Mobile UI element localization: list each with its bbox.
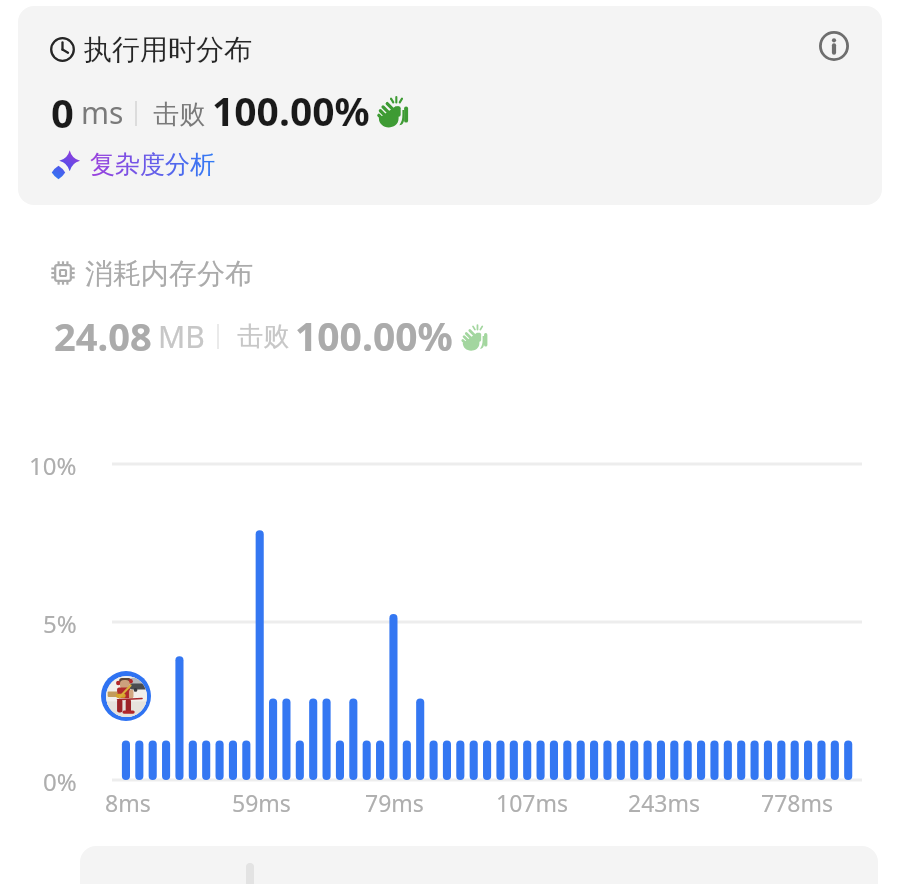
staticText: 100.00% [212,84,370,137]
staticText: 79ms [365,787,424,818]
button[interactable]: About execution time distribution [819,31,849,61]
button[interactable]: 消耗内存分布 [30,240,530,365]
staticText: 8ms [105,787,151,818]
staticText: 100.00% [295,309,453,362]
staticText: 107ms [496,787,568,818]
staticText: 消耗内存分布 [85,256,253,291]
staticText: 778ms [761,787,833,818]
staticText: 5% [43,607,77,640]
staticText: MB [158,316,205,357]
staticText: ms [81,92,124,133]
staticText: 0 [51,85,74,139]
staticText: 执行用时分布 [84,32,252,67]
button[interactable]: 执行用时分布 [18,6,882,205]
staticText: 复杂度分析 [90,149,215,180]
staticText: 击败 [153,98,205,131]
staticText: 243ms [628,787,700,818]
staticText: 59ms [232,787,291,818]
staticText: 10% [29,449,77,482]
staticText: 24.08 [54,310,152,362]
staticText: 0% [43,765,77,798]
staticText: 击败 [237,320,289,353]
button[interactable]: 复杂度分析 [50,148,215,180]
button[interactable]: Your submission [101,671,151,721]
